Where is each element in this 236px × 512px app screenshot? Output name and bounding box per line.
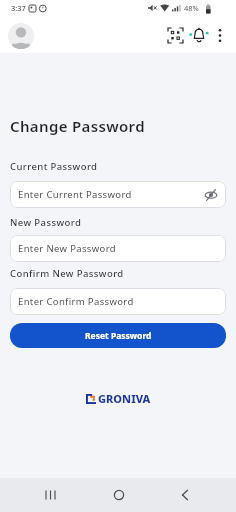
staticText: GRONIVA: [98, 391, 151, 406]
button[interactable]: Enter New Password: [10, 235, 226, 262]
staticText: Enter Confirm Password: [18, 295, 218, 308]
staticText: Current Password: [10, 160, 98, 173]
button[interactable]: [189, 26, 209, 46]
button[interactable]: Enter Current Password: [10, 181, 226, 208]
staticText: 3:37: [11, 3, 26, 13]
staticText: Change Password: [10, 116, 145, 136]
button[interactable]: [42, 486, 60, 504]
button[interactable]: [110, 486, 128, 504]
staticText: 48%: [184, 3, 199, 13]
button[interactable]: Reset Password: [10, 323, 226, 348]
button[interactable]: [176, 486, 194, 504]
staticText: Confirm New Password: [10, 267, 124, 280]
staticText: Reset Password: [85, 330, 152, 342]
staticText: Enter New Password: [18, 242, 218, 255]
staticText: Enter Current Password: [18, 188, 204, 201]
button[interactable]: [8, 23, 34, 49]
button[interactable]: [215, 28, 225, 43]
staticText: New Password: [10, 216, 82, 229]
button[interactable]: [168, 28, 183, 43]
button[interactable]: Enter Confirm Password: [10, 288, 226, 315]
